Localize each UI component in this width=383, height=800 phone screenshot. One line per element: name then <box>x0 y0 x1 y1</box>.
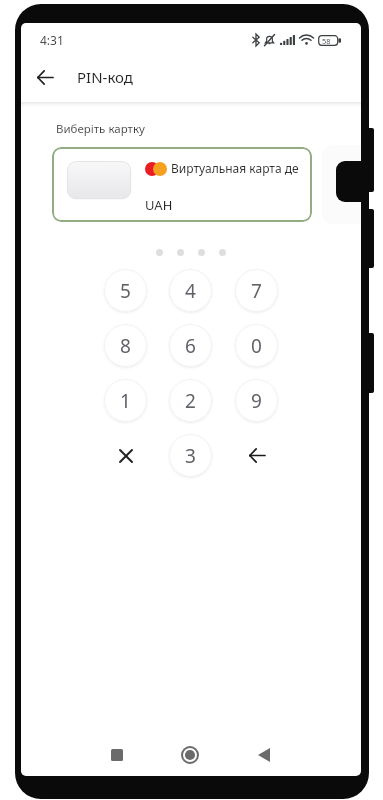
button[interactable]: 3 <box>169 434 212 477</box>
staticText: 4 <box>185 278 196 304</box>
button[interactable]: 4 <box>169 269 212 312</box>
button[interactable]: 0 <box>235 324 278 367</box>
button[interactable]: Back <box>25 57 65 97</box>
button[interactable]: Home <box>168 733 212 776</box>
button[interactable]: 8 <box>104 324 147 367</box>
staticText: 2 <box>185 388 196 414</box>
button[interactable]: 5 <box>104 269 147 312</box>
button[interactable]: 1 <box>104 379 147 422</box>
staticText: 1 <box>120 388 131 414</box>
button[interactable] <box>322 145 361 224</box>
button[interactable]: 6 <box>169 324 212 367</box>
staticText: Виртуальная карта де <box>171 160 299 176</box>
button[interactable]: 2 <box>169 379 212 422</box>
staticText: 6 <box>185 333 196 359</box>
button[interactable]: Виртуальная карта де <box>52 147 312 222</box>
button[interactable]: 9 <box>235 379 278 422</box>
staticText: 5 <box>120 278 131 304</box>
staticText: 3 <box>185 443 196 469</box>
staticText: Виберіть картку <box>56 121 145 137</box>
staticText: 4:31 <box>40 32 64 48</box>
staticText: 58 <box>322 36 331 46</box>
staticText: 7 <box>251 278 262 304</box>
button[interactable]: 7 <box>235 269 278 312</box>
button[interactable]: Clear <box>104 434 147 477</box>
staticText: PIN-код <box>77 67 133 87</box>
button[interactable]: Recents <box>95 733 139 776</box>
staticText: UAH <box>145 196 173 214</box>
staticText: 8 <box>120 333 131 359</box>
staticText: 0 <box>251 333 262 359</box>
button[interactable]: Back <box>242 733 286 776</box>
staticText: 9 <box>251 388 262 414</box>
button[interactable]: Backspace <box>235 434 278 477</box>
